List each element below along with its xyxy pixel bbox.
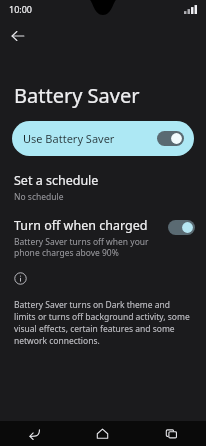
button[interactable]: Recent apps (137, 421, 206, 446)
staticText: Battery Saver turns off when your phone … (14, 236, 162, 258)
staticText: Turn off when charged (14, 217, 148, 234)
staticText: Set a schedule (14, 172, 99, 189)
button[interactable]: Set a schedule (0, 170, 206, 205)
staticText: 10:00 (9, 3, 33, 15)
staticText: No schedule (14, 191, 64, 203)
staticText: Battery Saver (14, 82, 140, 109)
button[interactable]: Use Battery Saver (12, 121, 194, 156)
button[interactable]: Turn off when charged (0, 217, 206, 258)
staticText: Use Battery Saver (23, 131, 115, 146)
button[interactable]: Home (68, 421, 137, 446)
button[interactable]: Back (5, 23, 31, 49)
button[interactable]: Back (0, 421, 68, 446)
staticText: Battery Saver turns on Dark theme and li… (14, 299, 192, 347)
